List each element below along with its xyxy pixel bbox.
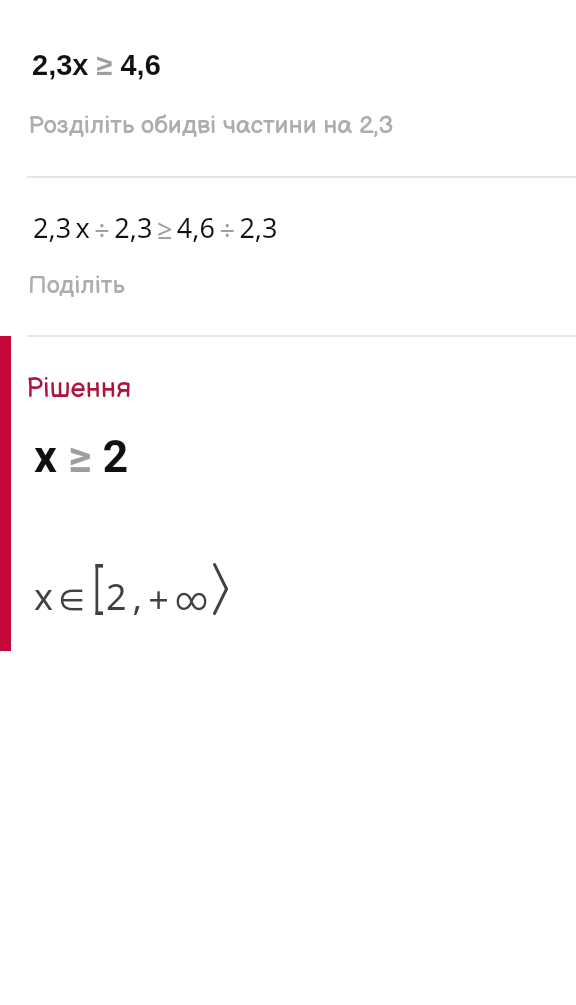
staticText: x ∈: [34, 572, 85, 626]
staticText: Розділіть обидві частини на 2,3: [28, 110, 394, 140]
staticText: x ≥ 2: [34, 430, 129, 483]
staticText: 2,3x ≥ 4,6: [32, 49, 161, 81]
button[interactable]: [0, 177, 576, 335]
button[interactable]: [0, 336, 576, 651]
staticText: 2,3 x ÷ 2,3 ≥ 4,6 ÷ 2,3: [33, 209, 278, 249]
staticText: 2 , + ∞: [106, 572, 209, 626]
button[interactable]: [0, 0, 576, 176]
staticText: Поділіть: [28, 270, 125, 300]
staticText: Рішення: [26, 373, 132, 405]
